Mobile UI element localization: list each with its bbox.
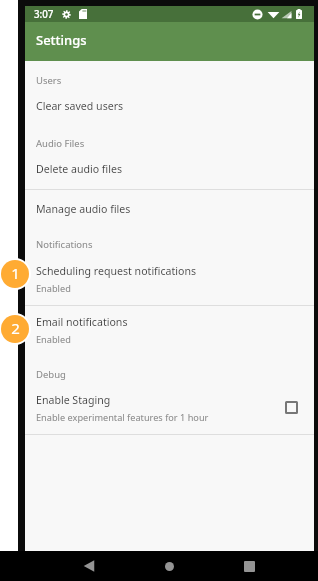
staticText: Audio Files [36, 137, 85, 150]
staticText: Clear saved users [36, 99, 124, 113]
button[interactable]: Manage audio files [25, 190, 314, 220]
button[interactable]: Settings [25, 22, 314, 61]
button[interactable]: Scheduling request notifications [25, 251, 314, 299]
staticText: Enable experimental features for 1 hour [36, 411, 209, 424]
staticText: Enabled [36, 333, 71, 346]
button[interactable]: Step 2 [0, 313, 31, 345]
staticText: Users [36, 74, 62, 87]
staticText: Delete audio files [36, 162, 123, 176]
staticText: 3:07 [34, 8, 54, 21]
staticText: Debug [36, 368, 66, 381]
staticText: 2 [11, 318, 20, 338]
staticText: Email notifications [36, 315, 128, 329]
button[interactable]: Recent apps [237, 554, 261, 578]
button[interactable]: Enable Staging [25, 381, 314, 428]
button[interactable]: Home [157, 554, 181, 578]
button[interactable]: Step 1 [0, 258, 31, 290]
staticText: Notifications [36, 238, 93, 251]
staticText: Enabled [36, 282, 71, 295]
staticText: Manage audio files [36, 202, 131, 216]
button[interactable]: Clear saved users [25, 87, 314, 117]
staticText: Enable Staging [36, 393, 111, 407]
staticText: Scheduling request notifications [36, 264, 197, 278]
button[interactable]: Back [77, 554, 101, 578]
button[interactable]: Delete audio files [25, 150, 314, 180]
staticText: Settings [36, 31, 87, 49]
staticText: 1 [11, 263, 20, 283]
button[interactable]: Email notifications [25, 306, 314, 350]
